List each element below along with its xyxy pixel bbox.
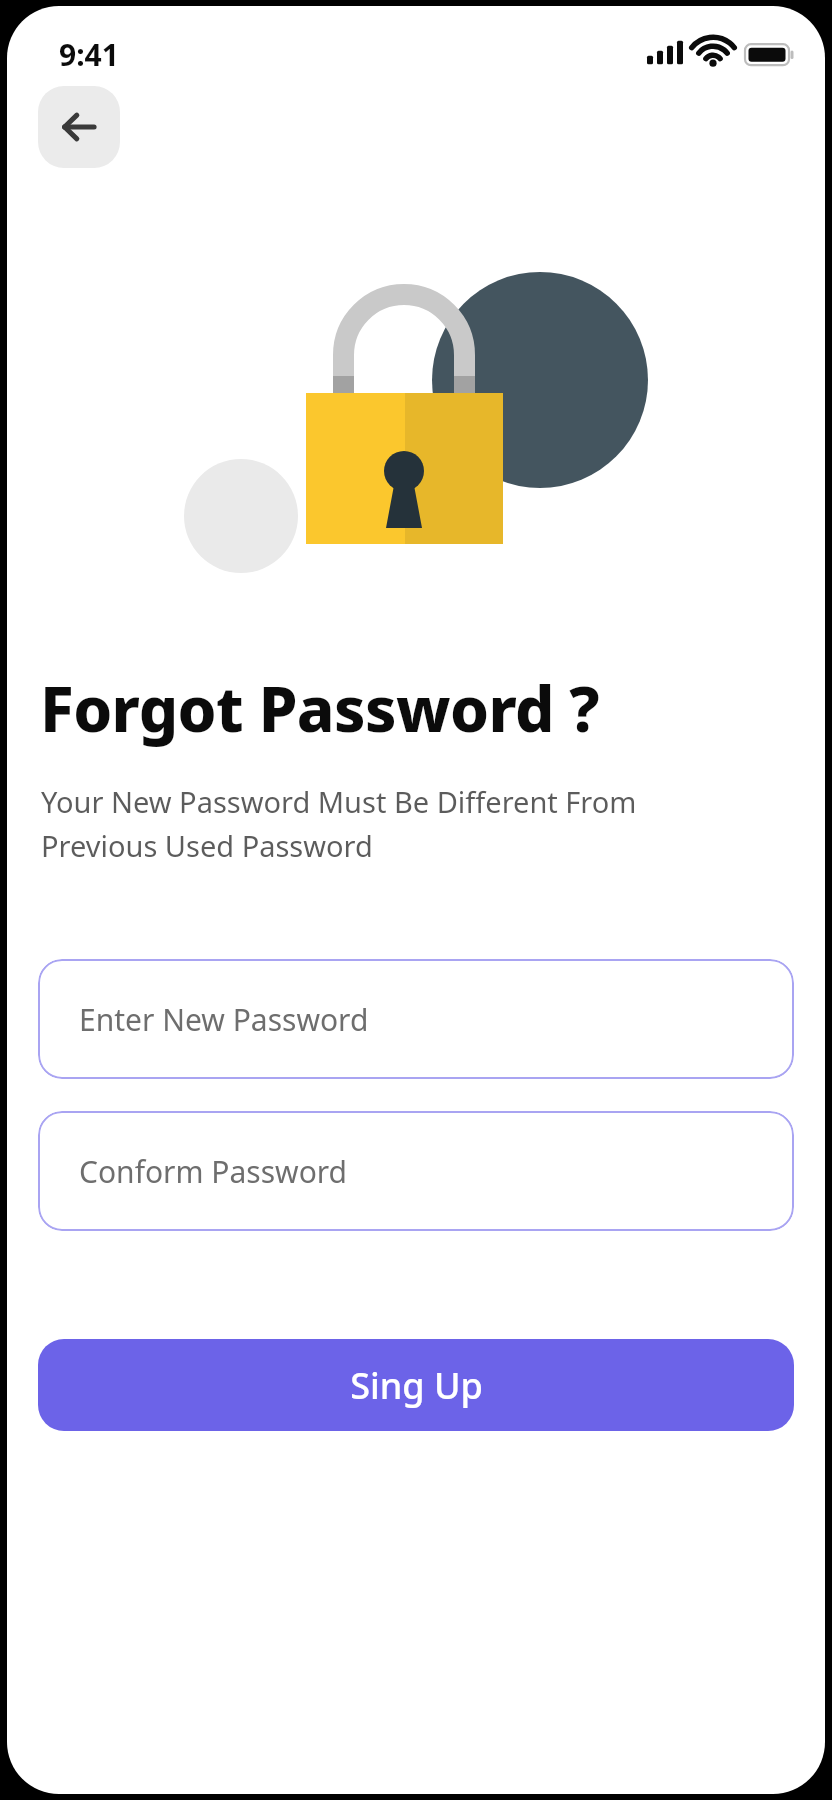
staticText: Your New Password Must Be Different From… [41,782,713,865]
staticText: Sing Up [350,1361,483,1410]
button[interactable]: Sing Up [38,1339,794,1431]
button[interactable]: Enter New Password [38,959,794,1079]
staticText: Forgot Password ? [40,666,600,750]
staticText: 9:41 [59,34,119,75]
staticText: Enter New Password [79,999,369,1040]
staticText: Conform Password [79,1151,348,1192]
button[interactable]: Conform Password [38,1111,794,1231]
button[interactable]: Back [38,86,120,168]
